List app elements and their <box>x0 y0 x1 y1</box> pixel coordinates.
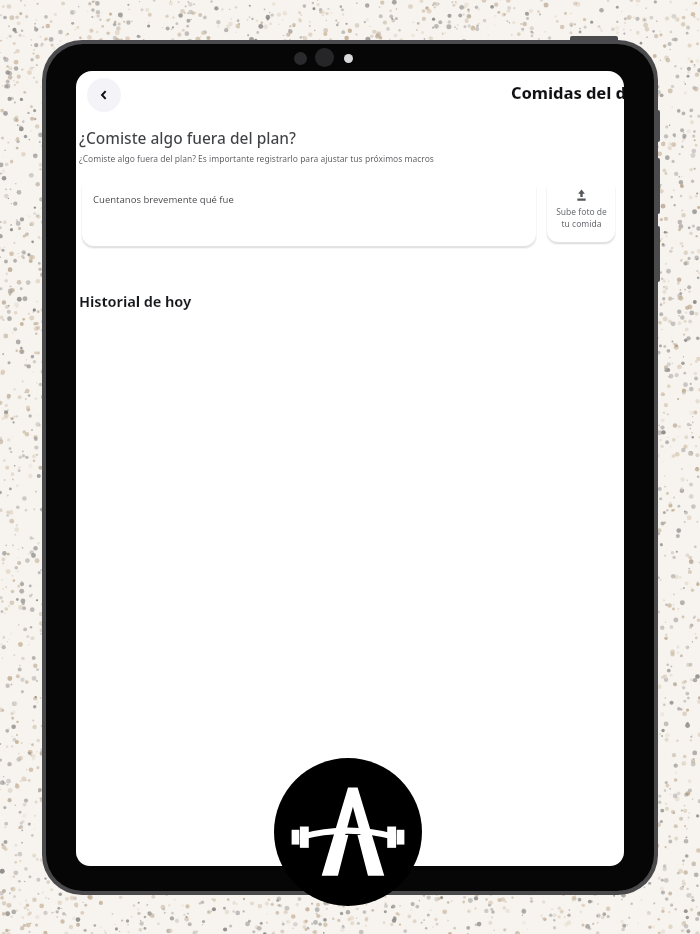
staticText: Comidas del día <box>511 81 624 103</box>
staticText: Sube foto de tu comida <box>556 206 607 230</box>
button[interactable]: Cuentanos brevemente qué fue <box>82 176 536 246</box>
staticText: ¿Comiste algo fuera del plan? Es importa… <box>79 153 434 165</box>
staticText: Cuentanos brevemente qué fue <box>93 193 234 206</box>
staticText: ¿Comiste algo fuera del plan? <box>79 127 296 148</box>
button[interactable]: Sube foto de tu comida <box>547 176 615 242</box>
staticText: Historial de hoy <box>79 291 192 311</box>
button[interactable]: Back <box>87 78 121 112</box>
